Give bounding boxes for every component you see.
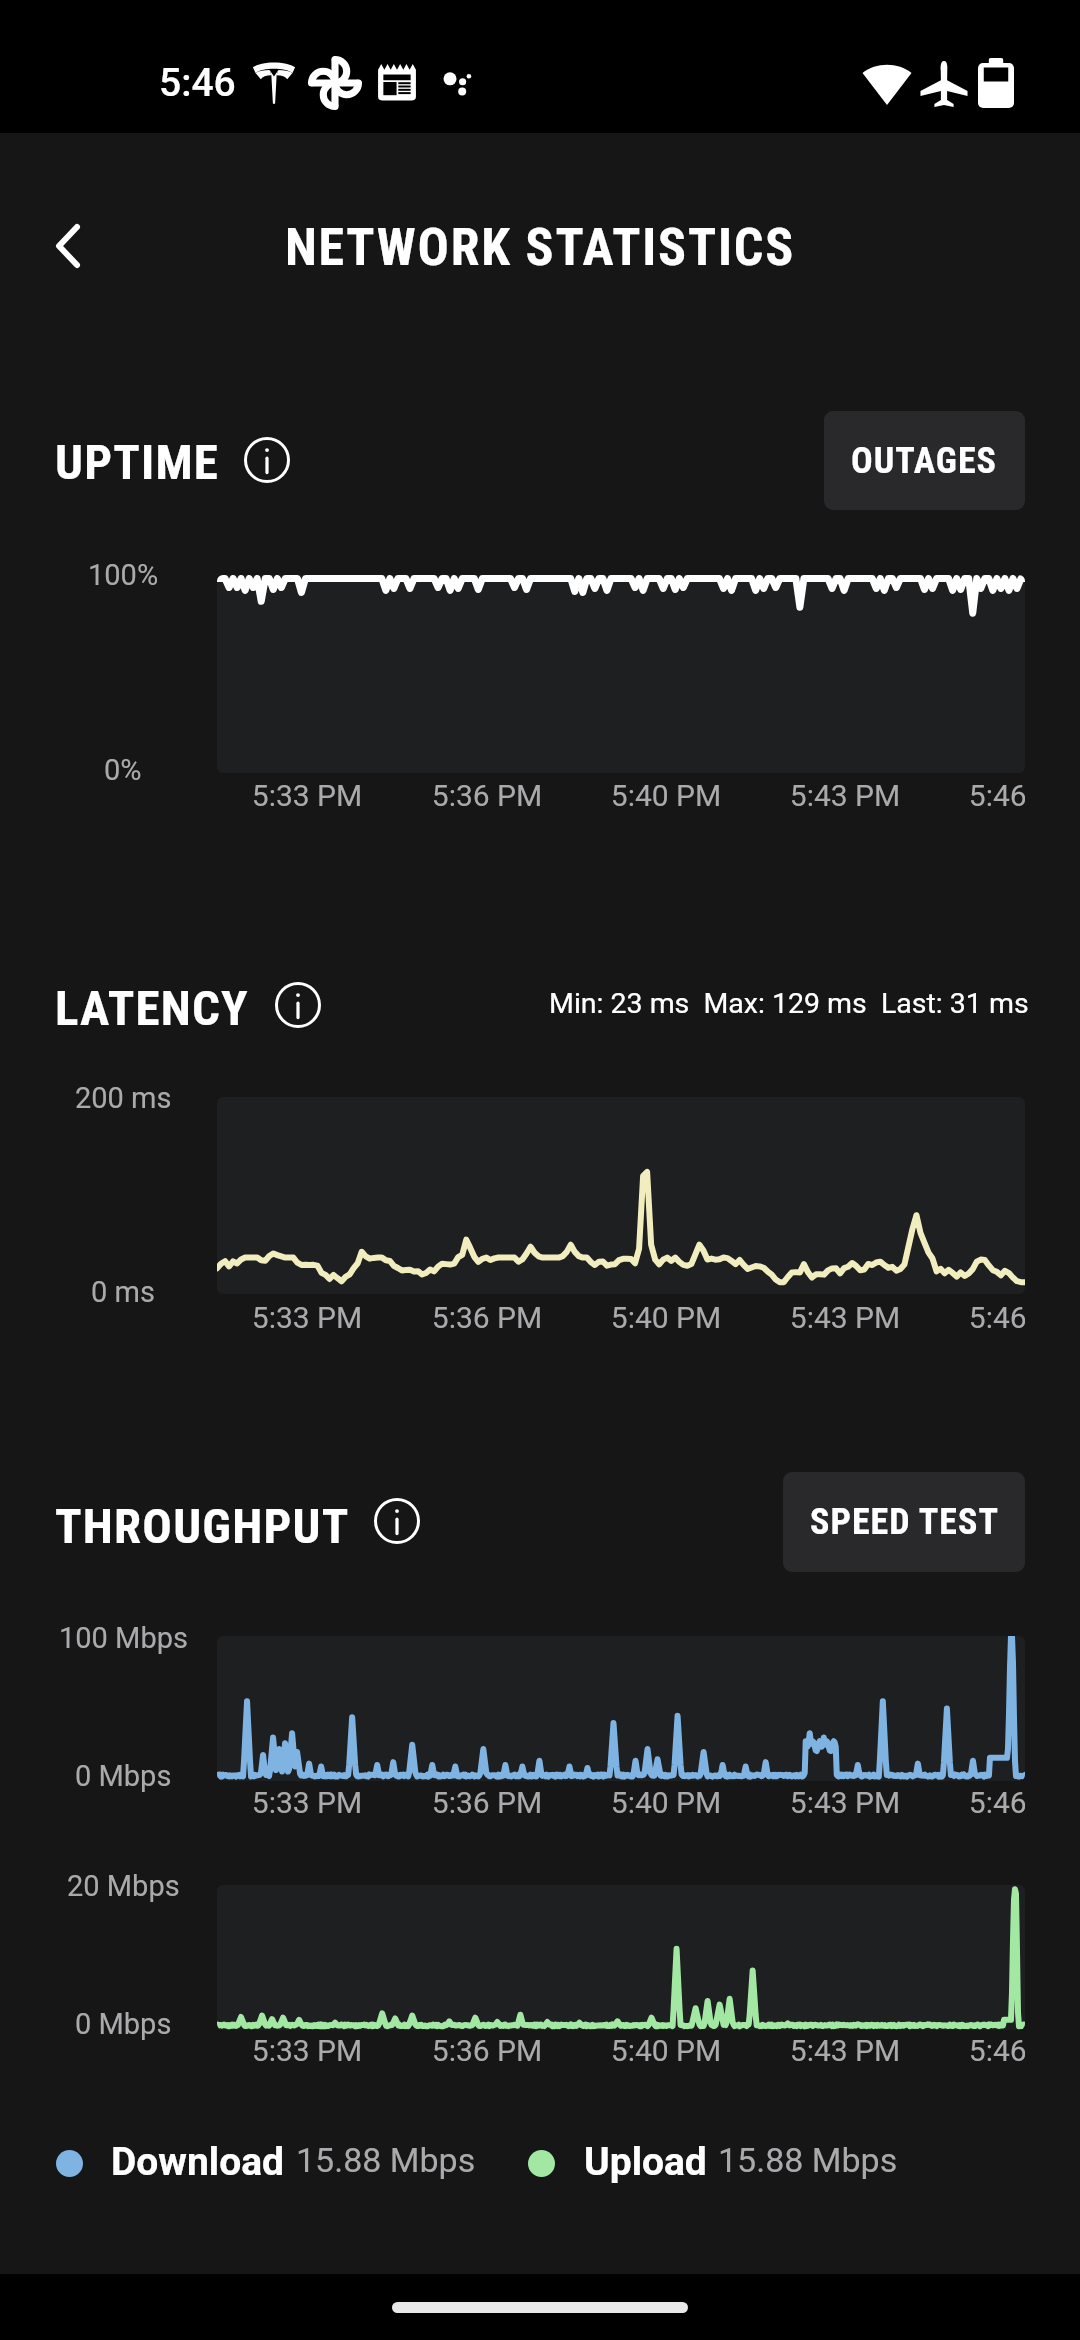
- staticText: 5:40 PM: [556, 778, 776, 813]
- staticText: 5:46 PM: [914, 778, 1080, 813]
- staticText: 15.88 Mbps: [296, 2140, 476, 2180]
- staticText: 5:46 PM: [914, 2033, 1080, 2068]
- staticText: Min: 23 ms Max: 129 ms Last: 31 ms: [549, 987, 1029, 1020]
- staticText: 5:43 PM: [735, 778, 955, 813]
- staticText: 5:36 PM: [377, 1785, 597, 1820]
- staticText: 5:46: [159, 60, 236, 106]
- staticText: 5:43 PM: [735, 1300, 955, 1335]
- staticText: Upload: [584, 2139, 707, 2185]
- staticText: 5:40 PM: [556, 2033, 776, 2068]
- staticText: 100%: [88, 558, 159, 592]
- button[interactable]: Throughput info: [369, 1493, 425, 1549]
- staticText: UPTIME: [55, 434, 220, 491]
- button[interactable]: OUTAGES: [824, 411, 1025, 510]
- button[interactable]: Uptime info: [239, 432, 295, 488]
- staticText: 5:33 PM: [197, 1785, 417, 1820]
- staticText: 15.88 Mbps: [718, 2140, 898, 2180]
- button[interactable]: Latency info: [270, 977, 326, 1033]
- staticText: 5:40 PM: [556, 1300, 776, 1335]
- staticText: 0%: [104, 753, 142, 787]
- staticText: SPEED TEST: [810, 1501, 999, 1543]
- staticText: NETWORK STATISTICS: [0, 217, 1080, 278]
- staticText: 0 Mbps: [75, 1759, 172, 1793]
- staticText: 5:46 PM: [914, 1785, 1080, 1820]
- button[interactable]: Back: [28, 206, 108, 286]
- staticText: 0 Mbps: [75, 2007, 172, 2041]
- staticText: 100 Mbps: [59, 1621, 188, 1655]
- staticText: THROUGHPUT: [55, 1498, 350, 1555]
- staticText: Download: [111, 2139, 285, 2185]
- staticText: 200 ms: [75, 1081, 172, 1115]
- staticText: 5:36 PM: [377, 1300, 597, 1335]
- staticText: 5:40 PM: [556, 1785, 776, 1820]
- staticText: OUTAGES: [851, 440, 998, 482]
- staticText: 20 Mbps: [67, 1869, 180, 1903]
- staticText: 5:43 PM: [735, 2033, 955, 2068]
- staticText: LATENCY: [55, 980, 249, 1037]
- staticText: 0 ms: [91, 1275, 155, 1309]
- staticText: 5:36 PM: [377, 778, 597, 813]
- staticText: 5:43 PM: [735, 1785, 955, 1820]
- staticText: 5:33 PM: [197, 778, 417, 813]
- button[interactable]: SPEED TEST: [783, 1472, 1025, 1572]
- staticText: 5:33 PM: [197, 1300, 417, 1335]
- staticText: 5:33 PM: [197, 2033, 417, 2068]
- staticText: 5:46 PM: [914, 1300, 1080, 1335]
- staticText: 5:36 PM: [377, 2033, 597, 2068]
